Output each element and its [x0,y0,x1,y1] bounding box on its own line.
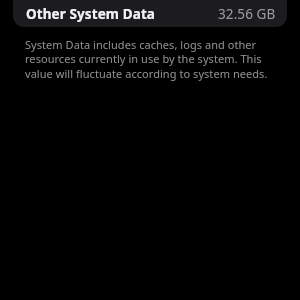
button[interactable]: Other System Data [13,0,287,27]
staticText: System Data includes caches, logs and ot… [25,37,272,82]
staticText: 32.56 GB [218,5,276,23]
staticText: Other System Data [26,5,156,23]
